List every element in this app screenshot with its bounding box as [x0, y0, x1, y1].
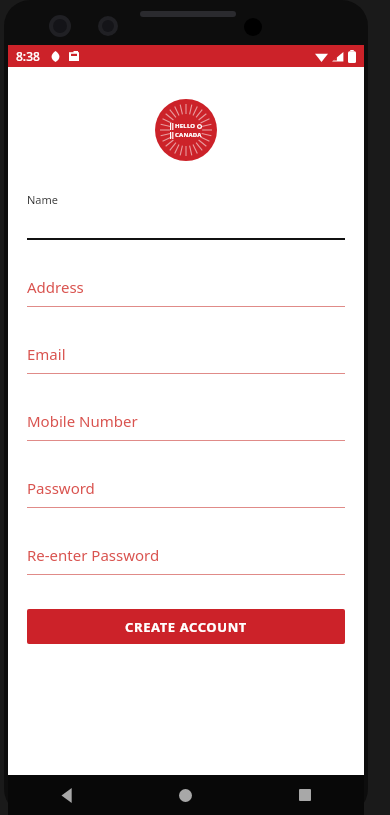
staticText: CREATE ACCOUNT — [125, 618, 247, 636]
staticText: Mobile Number — [27, 411, 138, 431]
staticText: CANADA — [175, 131, 202, 139]
button[interactable]: Re-enter Password — [27, 508, 345, 575]
button[interactable]: Mobile Number — [27, 374, 345, 441]
staticText: Re-enter Password — [27, 545, 160, 565]
staticText: Email — [27, 344, 66, 364]
button[interactable]: CREATE ACCOUNT — [27, 609, 345, 644]
staticText: Name — [27, 192, 59, 207]
staticText: Password — [27, 478, 95, 498]
button[interactable]: Password — [27, 441, 345, 508]
button[interactable]: Name — [27, 192, 345, 240]
button[interactable]: Email — [27, 307, 345, 374]
button[interactable]: Home — [126, 775, 245, 815]
staticText: 8:38 — [16, 48, 40, 64]
button[interactable]: Address — [27, 240, 345, 307]
staticText: Address — [27, 277, 84, 297]
staticText: HELLO — [175, 122, 196, 130]
button[interactable]: Recent apps — [245, 775, 364, 815]
button[interactable]: Back — [8, 775, 126, 815]
